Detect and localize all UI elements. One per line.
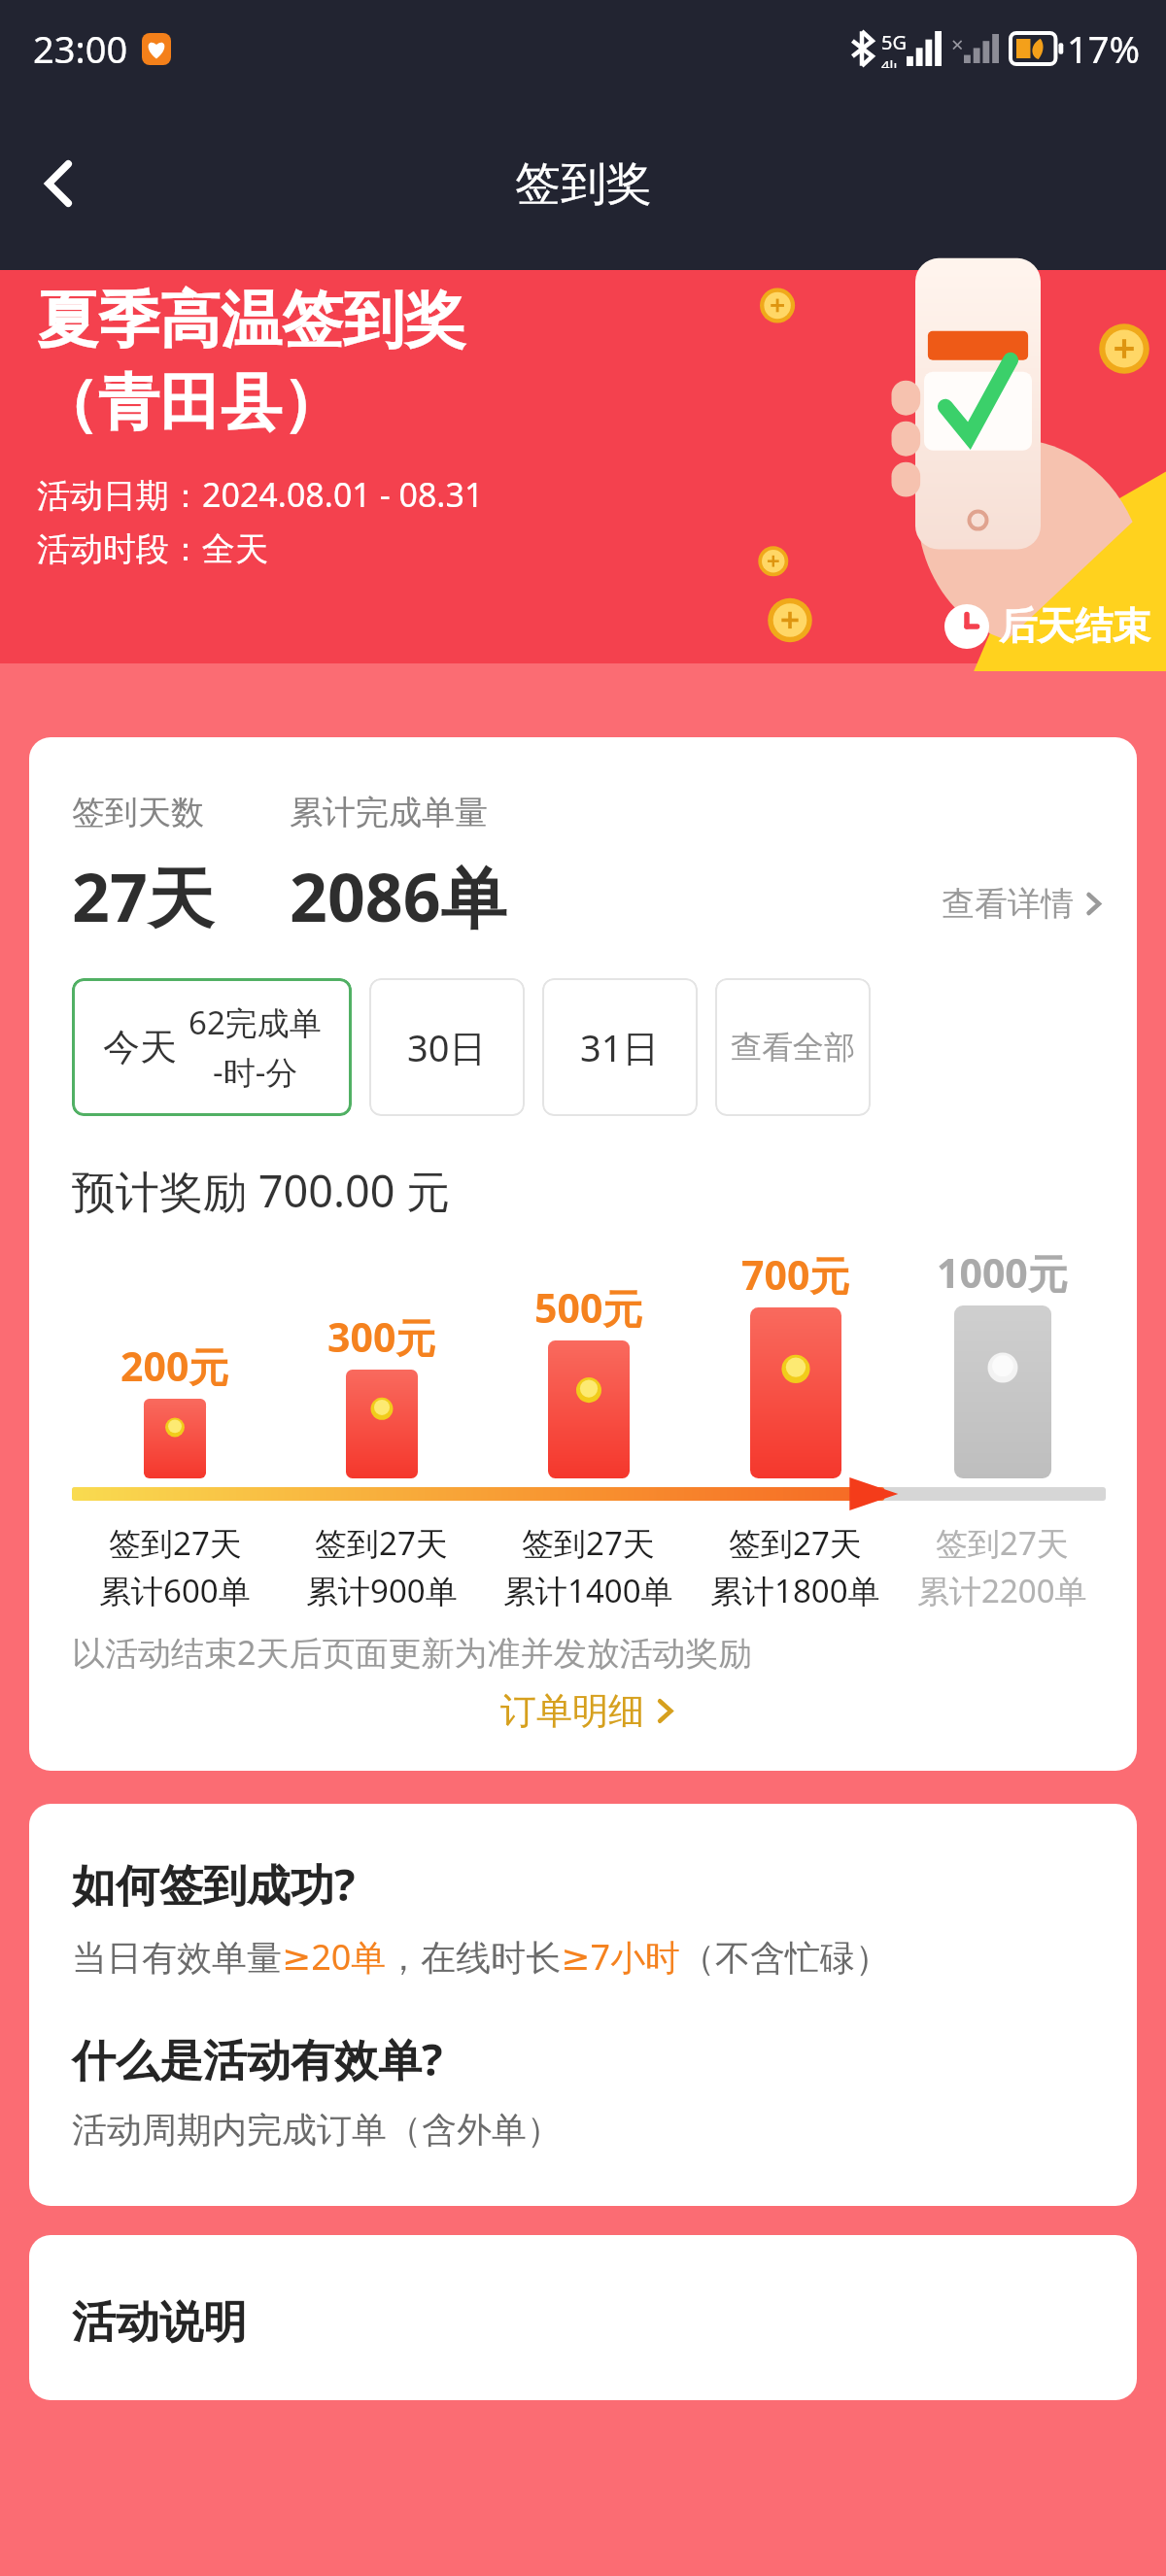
staticText: 如何签到成功? (72, 1854, 356, 1914)
button[interactable]: 查看详情 (934, 867, 1106, 925)
button[interactable]: 订单明细 (72, 1688, 1106, 1734)
staticText: 夏季高温签到奖 (37, 282, 465, 358)
staticText: 30日 (407, 1022, 487, 1072)
staticText: 签到27天 (315, 1521, 448, 1565)
staticText: （青田县） (37, 364, 343, 441)
staticText: 17% (1067, 23, 1141, 74)
staticText: 31日 (580, 1022, 660, 1072)
staticText: 当日有效单量≥20单，在线时长≥7小时（不含忙碌） (72, 1933, 891, 1981)
staticText: 62完成单 (189, 1000, 322, 1044)
staticText: 500元 (534, 1280, 643, 1335)
staticText: 签到天数 (72, 792, 290, 833)
staticText: -时-分 (213, 1050, 298, 1094)
staticText: 查看详情 (942, 883, 1074, 925)
staticText: 27天 (72, 851, 290, 941)
staticText: 4lı (881, 55, 898, 68)
staticText: 签到27天 (522, 1521, 655, 1565)
staticText: 23:00 (33, 23, 128, 74)
staticText: 200元 (120, 1339, 229, 1393)
staticText: 累计完成单量 (290, 792, 488, 833)
staticText: 累计900单 (306, 1569, 458, 1612)
staticText: 查看全部 (731, 1028, 855, 1067)
staticText: 活动周期内完成订单（含外单） (72, 2108, 562, 2152)
staticText: 什么是活动有效单? (72, 2029, 443, 2088)
staticText: 1000元 (937, 1245, 1068, 1300)
staticText: 活动日期：2024.08.01 - 08.31 (37, 472, 484, 517)
staticText: 订单明细 (500, 1688, 644, 1734)
staticText: 以活动结束2天后页面更新为准并发放活动奖励 (72, 1630, 752, 1675)
staticText: 预计奖励 700.00 元 (72, 1161, 451, 1220)
staticText: 签到27天 (109, 1521, 242, 1565)
staticText: 累计2200单 (917, 1569, 1087, 1612)
staticText: 今天 (103, 1024, 177, 1070)
staticText: 签到27天 (936, 1521, 1069, 1565)
staticText: 后天结束 (999, 602, 1150, 650)
staticText: 累计1800单 (710, 1569, 880, 1612)
button[interactable]: 查看全部 (715, 978, 871, 1116)
button[interactable]: 31日 (542, 978, 698, 1116)
staticText: 活动时段：全天 (37, 528, 268, 570)
button[interactable]: Back (16, 139, 105, 228)
staticText: 签到27天 (729, 1521, 862, 1565)
button[interactable]: 30日 (369, 978, 525, 1116)
staticText: 2086单 (290, 851, 507, 941)
staticText: 300元 (327, 1309, 436, 1364)
button[interactable]: 今天 (72, 978, 352, 1116)
staticText: 累计1400单 (503, 1569, 673, 1612)
staticText: × (951, 29, 964, 58)
staticText: 活动说明 (72, 2295, 247, 2351)
staticText: 700元 (741, 1247, 850, 1302)
staticText: 5G (881, 29, 907, 55)
staticText: 累计600单 (99, 1569, 251, 1612)
staticText: 签到奖 (515, 155, 652, 213)
